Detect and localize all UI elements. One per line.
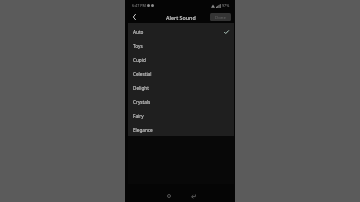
button[interactable]: Cupid	[128, 53, 234, 67]
staticText: Done	[215, 14, 226, 20]
staticText: Auto	[133, 29, 144, 35]
button[interactable]: Back	[129, 12, 139, 22]
button[interactable]: Done	[210, 13, 231, 21]
staticText: Fairy	[133, 113, 144, 119]
staticText: Delight	[133, 85, 149, 91]
button[interactable]: Auto	[128, 25, 234, 39]
staticText: 6:47 PM	[132, 3, 146, 8]
staticText: Toys	[133, 43, 143, 49]
staticText: Cupid	[133, 57, 146, 63]
staticText: Crystals	[133, 99, 151, 105]
button[interactable]: Back	[188, 191, 198, 201]
button[interactable]: Toys	[128, 39, 234, 53]
button[interactable]: Elegance	[128, 123, 234, 136]
button[interactable]: Celestial	[128, 67, 234, 81]
button[interactable]: Fairy	[128, 109, 234, 123]
button[interactable]: Home	[164, 191, 174, 201]
staticText: 97%	[222, 3, 230, 8]
button[interactable]: Crystals	[128, 95, 234, 109]
staticText: Elegance	[133, 127, 153, 133]
staticText: Alert Sound	[166, 14, 196, 21]
staticText: Celestial	[133, 71, 152, 77]
button[interactable]: Delight	[128, 81, 234, 95]
